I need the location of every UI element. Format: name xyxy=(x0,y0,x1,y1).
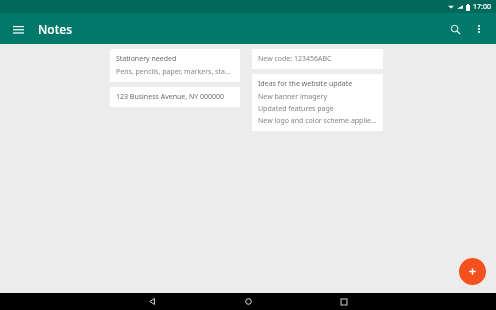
staticText: Ideas for the website update xyxy=(258,79,353,89)
staticText: 17:00 xyxy=(473,2,491,12)
staticText: Notes xyxy=(38,21,72,37)
button[interactable]: Home xyxy=(241,294,256,309)
staticText: Stationery needed xyxy=(116,54,177,64)
button[interactable]: Stationery needed xyxy=(110,49,240,82)
staticText: 123 Business Avenue, NY 000000 xyxy=(116,92,225,102)
button[interactable]: Search xyxy=(442,16,468,42)
staticText: Pens, pencils, paper, markers, staples xyxy=(116,67,234,77)
button[interactable]: More options xyxy=(468,18,490,40)
staticText: New logo and color scheme applied... xyxy=(258,116,377,126)
button[interactable]: Create new note xyxy=(459,258,486,285)
button[interactable]: Recent apps xyxy=(336,294,351,309)
button[interactable]: Open navigation menu xyxy=(6,17,30,41)
staticText: New banner imagery xyxy=(258,92,327,102)
button[interactable]: Ideas for the website update xyxy=(252,74,383,131)
staticText: Updated features page xyxy=(258,104,334,114)
button[interactable]: Back xyxy=(145,294,160,309)
staticText: New code: 123456ABC xyxy=(258,54,332,64)
button[interactable]: 123 Business Avenue, NY 000000 xyxy=(110,87,240,107)
button[interactable]: New code: 123456ABC xyxy=(252,49,383,69)
